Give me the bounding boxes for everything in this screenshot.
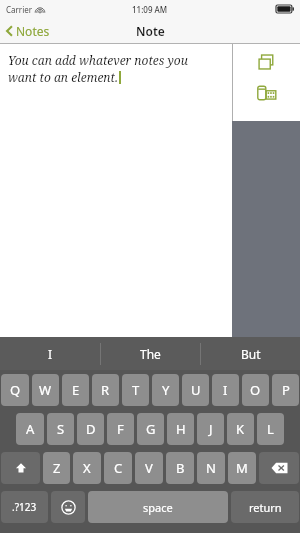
- button[interactable]: Media: [253, 81, 281, 105]
- button[interactable]: Y: [152, 374, 179, 406]
- staticText: Y: [162, 381, 170, 399]
- button[interactable]: E: [62, 374, 89, 406]
- staticText: W: [39, 381, 52, 399]
- button[interactable]: G: [137, 413, 164, 445]
- button[interactable]: Notes: [0, 20, 58, 42]
- staticText: D: [86, 420, 96, 438]
- button[interactable]: Z: [43, 452, 70, 484]
- button[interactable]: Shift: [1, 452, 40, 484]
- button[interactable]: A: [16, 413, 44, 445]
- button[interactable]: U: [182, 374, 209, 406]
- button[interactable]: F: [107, 413, 134, 445]
- staticText: 11:09 AM: [132, 4, 168, 15]
- button[interactable]: The: [101, 337, 200, 370]
- button[interactable]: I: [0, 337, 100, 370]
- button[interactable]: Q: [1, 374, 29, 406]
- button[interactable]: P: [272, 374, 299, 406]
- staticText: X: [83, 459, 91, 477]
- button[interactable]: J: [197, 413, 224, 445]
- staticText: I: [223, 381, 228, 399]
- button[interactable]: C: [104, 452, 132, 484]
- staticText: .?123: [12, 500, 37, 514]
- staticText: B: [176, 459, 185, 477]
- staticText: O: [250, 381, 261, 399]
- button[interactable]: You can add whatever notes you: [8, 52, 224, 85]
- staticText: You can add whatever notes you: [8, 52, 188, 68]
- button[interactable]: O: [242, 374, 269, 406]
- button[interactable]: B: [166, 452, 194, 484]
- staticText: R: [101, 381, 110, 399]
- staticText: C: [114, 459, 123, 477]
- staticText: I: [48, 346, 53, 362]
- button[interactable]: X: [73, 452, 101, 484]
- staticText: H: [176, 420, 186, 438]
- button[interactable]: V: [135, 452, 163, 484]
- button[interactable]: I: [212, 374, 239, 406]
- button[interactable]: Delete: [259, 452, 299, 484]
- staticText: want to an element.: [8, 69, 118, 85]
- staticText: S: [57, 420, 65, 438]
- staticText: Note: [136, 23, 165, 39]
- staticText: E: [72, 381, 80, 399]
- staticText: L: [267, 420, 274, 438]
- staticText: M: [236, 459, 248, 477]
- staticText: F: [117, 420, 124, 438]
- staticText: J: [209, 420, 213, 438]
- staticText: V: [145, 459, 153, 477]
- staticText: Z: [53, 459, 61, 477]
- staticText: K: [236, 420, 245, 438]
- button[interactable]: Duplicate: [254, 50, 280, 75]
- staticText: A: [26, 420, 35, 438]
- staticText: P: [282, 381, 290, 399]
- button[interactable]: H: [167, 413, 194, 445]
- staticText: T: [132, 381, 140, 399]
- staticText: Carrier: [6, 4, 33, 15]
- staticText: return: [249, 500, 282, 515]
- staticText: G: [146, 420, 156, 438]
- button[interactable]: N: [197, 452, 225, 484]
- staticText: Q: [10, 381, 21, 399]
- button[interactable]: W: [32, 374, 59, 406]
- button[interactable]: space: [88, 491, 228, 523]
- staticText: The: [140, 346, 161, 362]
- button[interactable]: L: [257, 413, 284, 445]
- button[interactable]: Emoji: [51, 491, 85, 523]
- button[interactable]: .?123: [1, 491, 48, 523]
- button[interactable]: return: [231, 491, 299, 523]
- staticText: N: [206, 459, 216, 477]
- staticText: space: [143, 500, 173, 515]
- staticText: But: [241, 346, 261, 362]
- button[interactable]: But: [201, 337, 300, 370]
- button[interactable]: S: [47, 413, 74, 445]
- button[interactable]: R: [92, 374, 119, 406]
- button[interactable]: M: [228, 452, 256, 484]
- staticText: Notes: [16, 23, 50, 39]
- button[interactable]: K: [227, 413, 254, 445]
- button[interactable]: T: [122, 374, 149, 406]
- staticText: U: [191, 381, 201, 399]
- button[interactable]: D: [77, 413, 104, 445]
